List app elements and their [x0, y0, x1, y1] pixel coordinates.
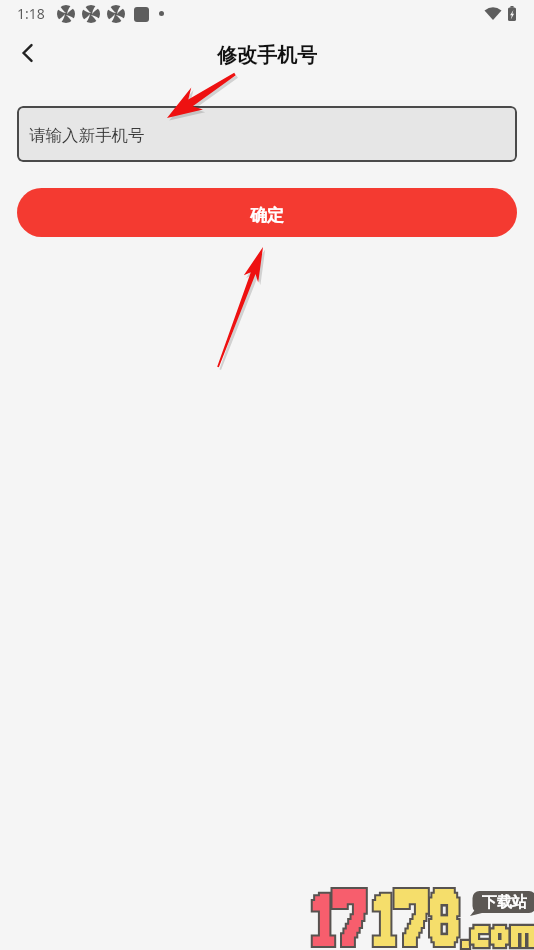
staticText: 确定	[250, 205, 284, 226]
button[interactable]: 确定	[17, 188, 517, 237]
button[interactable]: Back	[6, 31, 50, 75]
staticText: 下载站	[482, 893, 527, 912]
staticText: 修改手机号	[217, 43, 317, 68]
staticText: 1:18	[17, 4, 45, 23]
staticText: 请输入新手机号	[29, 125, 145, 146]
button[interactable]: 请输入新手机号	[17, 106, 517, 162]
